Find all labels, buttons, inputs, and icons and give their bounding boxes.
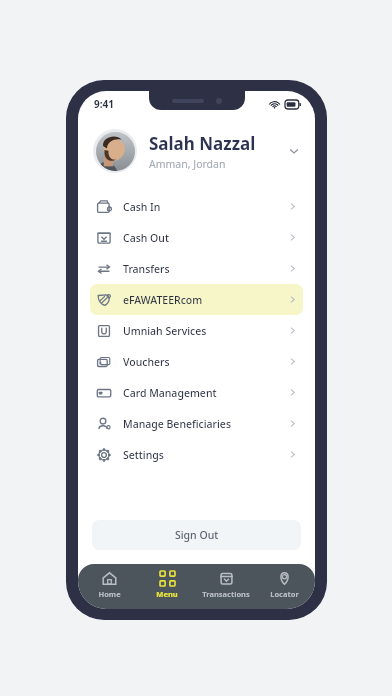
button[interactable]: Card Management bbox=[90, 377, 303, 408]
staticText: Salah Nazzal bbox=[149, 132, 256, 155]
button[interactable]: eFAWATEERcom bbox=[90, 284, 303, 315]
button[interactable]: Manage Beneficiaries bbox=[90, 408, 303, 439]
button[interactable]: Transfers bbox=[90, 253, 303, 284]
staticText: Umniah Services bbox=[123, 324, 207, 338]
staticText: Transfers bbox=[123, 262, 170, 276]
staticText: Amman, Jordan bbox=[149, 157, 226, 171]
button[interactable]: Vouchers bbox=[90, 346, 303, 377]
staticText: Card Management bbox=[123, 386, 217, 400]
button[interactable]: Cash Out bbox=[90, 222, 303, 253]
staticText: Manage Beneficiaries bbox=[123, 417, 231, 431]
staticText: 9:41 bbox=[94, 97, 114, 111]
staticText: Settings bbox=[123, 448, 164, 462]
staticText: Sign Out bbox=[175, 528, 219, 542]
staticText: Vouchers bbox=[123, 355, 170, 369]
button[interactable]: Salah Nazzal bbox=[78, 125, 315, 177]
button[interactable]: Sign Out bbox=[92, 520, 301, 550]
staticText: eFAWATEERcom bbox=[123, 293, 203, 307]
button[interactable]: Home bbox=[81, 569, 137, 601]
button[interactable]: Umniah Services bbox=[90, 315, 303, 346]
button[interactable]: Transactions bbox=[198, 569, 254, 601]
staticText: Cash In bbox=[123, 200, 161, 214]
button[interactable]: Menu bbox=[139, 569, 195, 601]
button[interactable]: Settings bbox=[90, 439, 303, 470]
staticText: Locator bbox=[270, 589, 299, 599]
staticText: Cash Out bbox=[123, 231, 169, 245]
staticText: Transactions bbox=[202, 589, 250, 599]
button[interactable]: Cash In bbox=[90, 191, 303, 222]
staticText: Home bbox=[98, 589, 121, 599]
button[interactable]: Locator bbox=[256, 569, 312, 601]
staticText: Menu bbox=[156, 589, 178, 599]
